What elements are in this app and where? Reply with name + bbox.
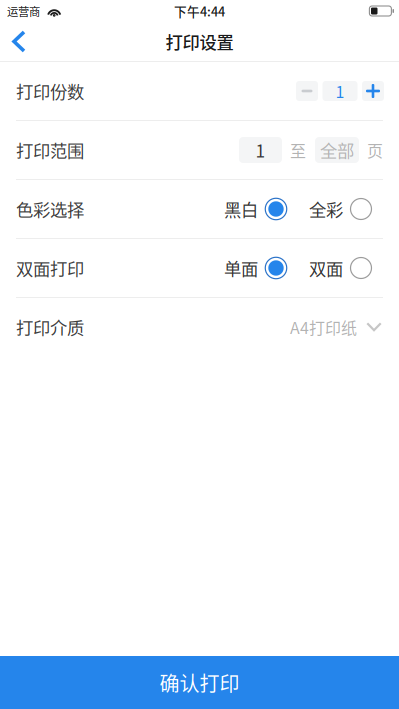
staticText: 至	[290, 138, 306, 162]
staticText: 确认打印	[159, 668, 239, 697]
staticText: 色彩选择	[16, 196, 84, 222]
button[interactable]: Increase copies	[362, 81, 384, 101]
button[interactable]: 打印介质	[0, 298, 399, 356]
button[interactable]: Back	[0, 21, 40, 62]
staticText: 打印介质	[16, 314, 84, 340]
button[interactable]: 全彩	[309, 188, 372, 230]
button[interactable]: Decrease copies	[296, 81, 318, 101]
staticText: 1	[255, 137, 265, 163]
button[interactable]: 单面	[224, 247, 287, 289]
staticText: 双面	[309, 255, 343, 281]
button[interactable]: 双面	[309, 247, 372, 289]
staticText: 全彩	[309, 196, 343, 222]
staticText: 运营商	[7, 3, 40, 19]
button[interactable]: 确认打印	[0, 656, 399, 709]
staticText: 黑白	[224, 196, 258, 222]
staticText: 打印范围	[16, 137, 84, 163]
staticText: 页	[367, 138, 383, 162]
staticText: 下午4:44	[174, 2, 225, 20]
staticText: 双面打印	[16, 255, 84, 281]
staticText: A4打印纸	[290, 315, 357, 339]
staticText: 全部	[320, 137, 354, 163]
staticText: 1	[335, 79, 344, 103]
button[interactable]: 黑白	[224, 188, 287, 230]
staticText: 单面	[224, 255, 258, 281]
staticText: 打印份数	[16, 78, 84, 104]
staticText: 打印设置	[165, 29, 233, 54]
